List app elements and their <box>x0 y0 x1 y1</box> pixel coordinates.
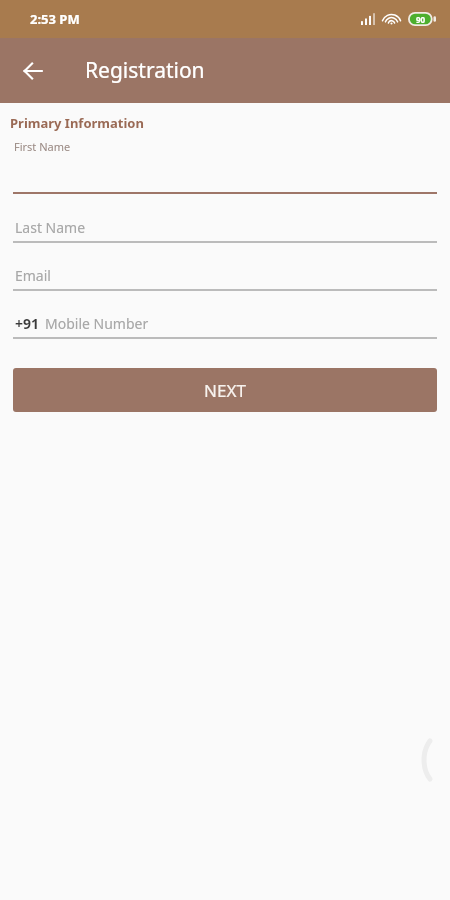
button[interactable]: +91 <box>0 314 450 340</box>
staticText: 90 <box>416 14 426 25</box>
staticText: Mobile Number <box>45 314 149 333</box>
staticText: 2:53 PM <box>30 10 80 28</box>
staticText: +91 <box>15 314 40 333</box>
staticText: Registration <box>85 56 205 85</box>
staticText: First Name <box>14 139 71 154</box>
staticText: Last Name <box>15 218 86 237</box>
button[interactable]: NEXT <box>13 368 437 412</box>
staticText: Primary Information <box>10 114 144 132</box>
staticText: NEXT <box>204 379 246 402</box>
button[interactable]: Back <box>13 51 53 91</box>
button[interactable]: First Name <box>0 139 450 196</box>
button[interactable]: Email <box>0 266 450 292</box>
button[interactable]: Last Name <box>0 218 450 244</box>
staticText: Email <box>15 266 51 285</box>
